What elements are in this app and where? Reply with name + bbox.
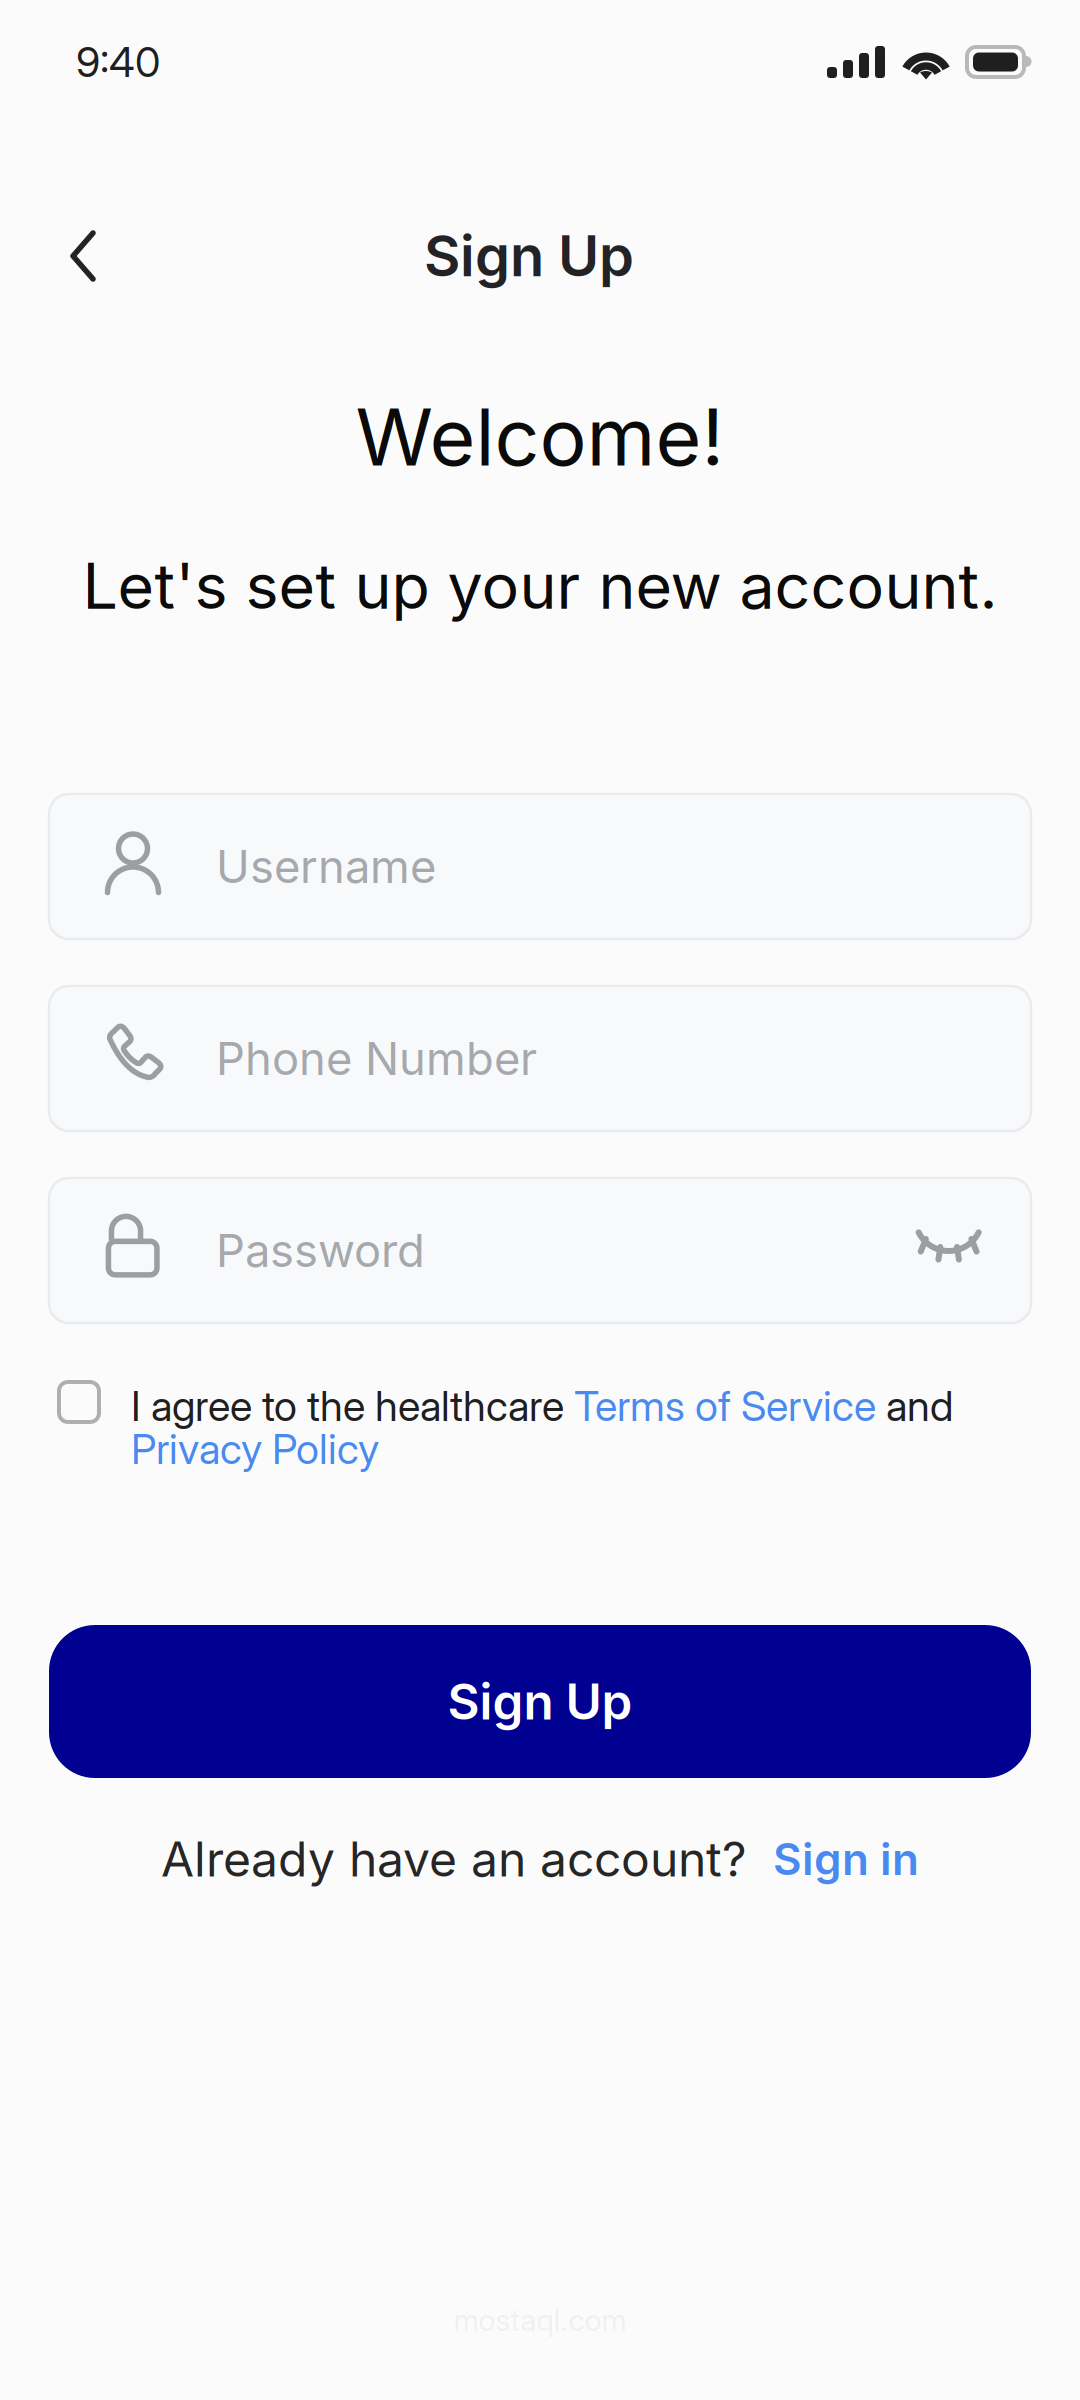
staticText: Sign Up xyxy=(447,1672,632,1731)
staticText: I agree to the healthcare xyxy=(131,1381,574,1431)
staticText: mostaql.com xyxy=(453,2302,626,2338)
staticText: Let's set up your new account. xyxy=(82,548,997,624)
staticText: 9:40 xyxy=(76,37,160,87)
button[interactable]: Back xyxy=(40,223,126,289)
button[interactable]: Show password xyxy=(912,1211,990,1289)
staticText: Password xyxy=(216,1223,425,1278)
staticText: Sign in xyxy=(773,1832,919,1886)
button[interactable]: I agree to the healthcare xyxy=(0,1381,1080,1474)
staticText: Username xyxy=(216,839,436,894)
staticText: Phone Number xyxy=(216,1031,537,1086)
button[interactable]: Sign Up xyxy=(49,1625,1031,1778)
button[interactable]: Sign in xyxy=(747,1832,919,1886)
staticText: and xyxy=(876,1381,953,1431)
staticText: Privacy Policy xyxy=(131,1424,379,1474)
staticText: Welcome! xyxy=(355,389,724,485)
staticText: Already have an account? xyxy=(161,1830,747,1888)
staticText: Terms of Service xyxy=(574,1381,876,1431)
staticText: Sign Up xyxy=(424,222,634,290)
